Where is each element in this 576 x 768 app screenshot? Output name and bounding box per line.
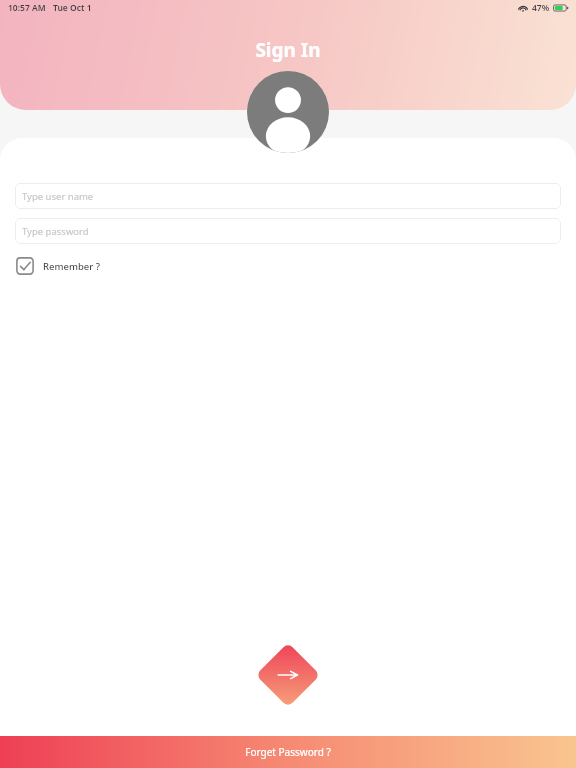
- staticText: Type user name: [22, 190, 94, 203]
- staticText: Tue Oct 1: [53, 2, 92, 14]
- staticText: Type password: [22, 225, 89, 238]
- button[interactable]: Type password: [15, 218, 561, 244]
- button[interactable]: Remember ?: [15, 255, 101, 277]
- button[interactable]: Profile photo: [247, 71, 329, 153]
- button[interactable]: Type user name: [15, 183, 561, 209]
- staticText: 10:57 AM: [8, 2, 46, 14]
- staticText: Remember ?: [43, 260, 100, 273]
- button[interactable]: Forget Password ?: [0, 736, 576, 768]
- button[interactable]: Sign in: [255, 642, 321, 708]
- staticText: Forget Password ?: [245, 745, 331, 759]
- staticText: 47%: [532, 2, 550, 14]
- staticText: Sign In: [255, 37, 321, 63]
